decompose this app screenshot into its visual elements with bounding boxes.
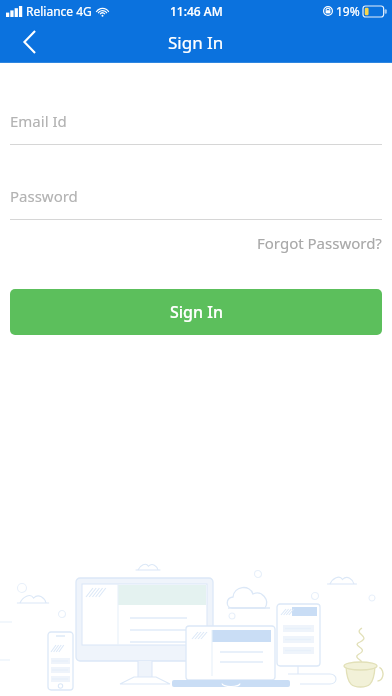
staticText: Reliance 4G [26,3,92,19]
button[interactable]: Sign In [10,289,382,335]
staticText: Email Id [10,111,67,131]
staticText: Forgot Password? [257,233,382,253]
staticText: Sign In [170,301,223,323]
button[interactable]: Forgot Password? [257,233,382,253]
staticText: Sign In [168,31,224,54]
staticText: 19% [336,3,360,19]
button[interactable]: Back [12,24,48,60]
staticText: Password [10,186,78,206]
staticText: 11:46 AM [170,3,223,19]
